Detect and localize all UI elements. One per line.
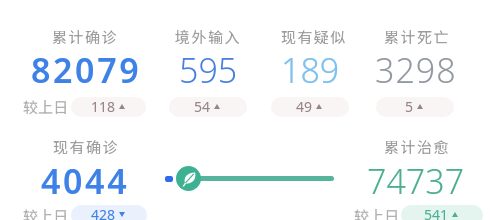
button[interactable]: 541 (401, 205, 483, 220)
button[interactable]: 54 (169, 97, 247, 117)
button[interactable]: 118 (71, 97, 146, 117)
button[interactable]: 5 (376, 97, 454, 117)
staticText: 累计治愈 (384, 136, 451, 158)
staticText: 较上日 (23, 96, 69, 118)
staticText: 累计确诊 (52, 26, 119, 48)
staticText: 595 (179, 47, 238, 93)
button[interactable]: Health code (176, 166, 201, 191)
staticText: 境外输入 (175, 26, 242, 48)
staticText: 累计死亡 (384, 26, 451, 48)
staticText: 428 (91, 205, 116, 220)
staticText: 较上日 (354, 205, 400, 220)
staticText: 189 (281, 47, 340, 93)
staticText: 74737 (367, 158, 465, 204)
staticText: 现有确诊 (53, 136, 120, 158)
staticText: 4044 (41, 158, 130, 204)
staticText: 较上日 (23, 205, 69, 220)
staticText: 54 (194, 97, 211, 116)
staticText: 3298 (375, 47, 457, 93)
button[interactable]: 428 (71, 205, 147, 220)
staticText: 5 (405, 97, 414, 116)
staticText: 现有疑似 (281, 26, 348, 48)
staticText: 82079 (31, 47, 142, 93)
button[interactable]: 49 (271, 97, 349, 117)
staticText: 49 (296, 97, 313, 116)
staticText: 118 (91, 97, 116, 116)
staticText: 541 (424, 205, 449, 220)
